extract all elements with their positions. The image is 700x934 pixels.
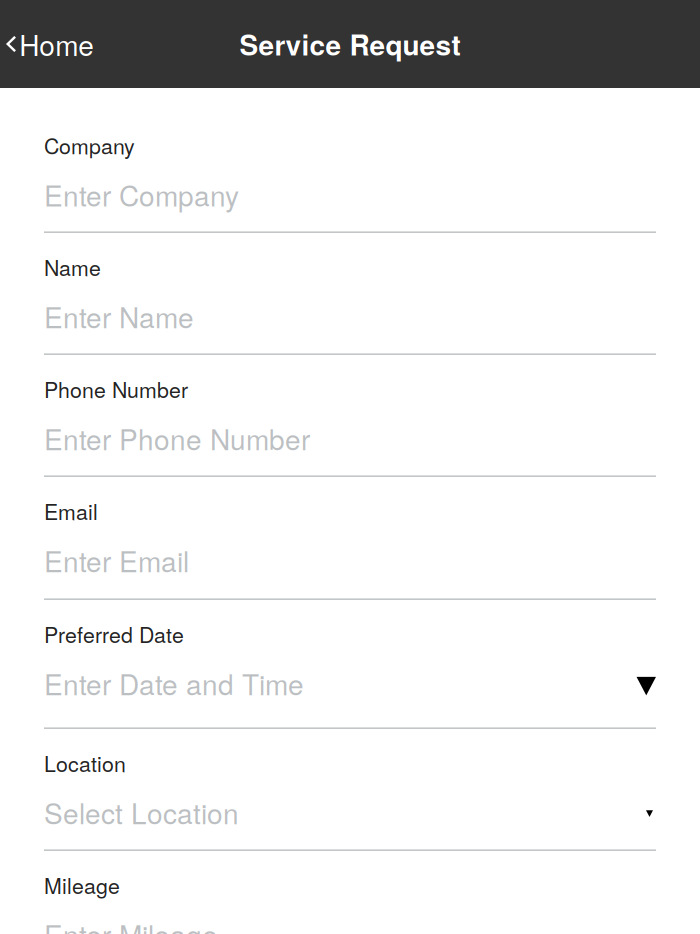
staticText: Company [44, 130, 135, 160]
staticText: Name [44, 252, 101, 282]
button[interactable]: Company [0, 88, 700, 233]
button[interactable]: Email [0, 477, 700, 600]
staticText: Location [44, 748, 126, 778]
staticText: Preferred Date [44, 619, 184, 649]
staticText: Service Request [239, 24, 460, 64]
button[interactable]: Home [0, 0, 106, 88]
staticText: Enter Company [44, 174, 239, 214]
staticText: Enter Date and Time [44, 663, 304, 703]
button[interactable]: Location [0, 729, 700, 851]
button[interactable]: Preferred Date [0, 600, 700, 729]
staticText: Email [44, 496, 98, 526]
staticText: Phone Number [44, 374, 188, 404]
staticText: Select Location [44, 792, 239, 832]
staticText: Enter Phone Number [44, 418, 310, 458]
button[interactable]: Name [0, 233, 700, 355]
staticText: Mileage [44, 870, 120, 900]
staticText: Home [19, 24, 94, 64]
button[interactable]: Mileage [0, 851, 700, 934]
staticText: Enter Email [44, 540, 189, 580]
staticText: Enter Mileage [44, 914, 218, 934]
button[interactable]: Phone Number [0, 355, 700, 477]
staticText: Enter Name [44, 296, 194, 336]
